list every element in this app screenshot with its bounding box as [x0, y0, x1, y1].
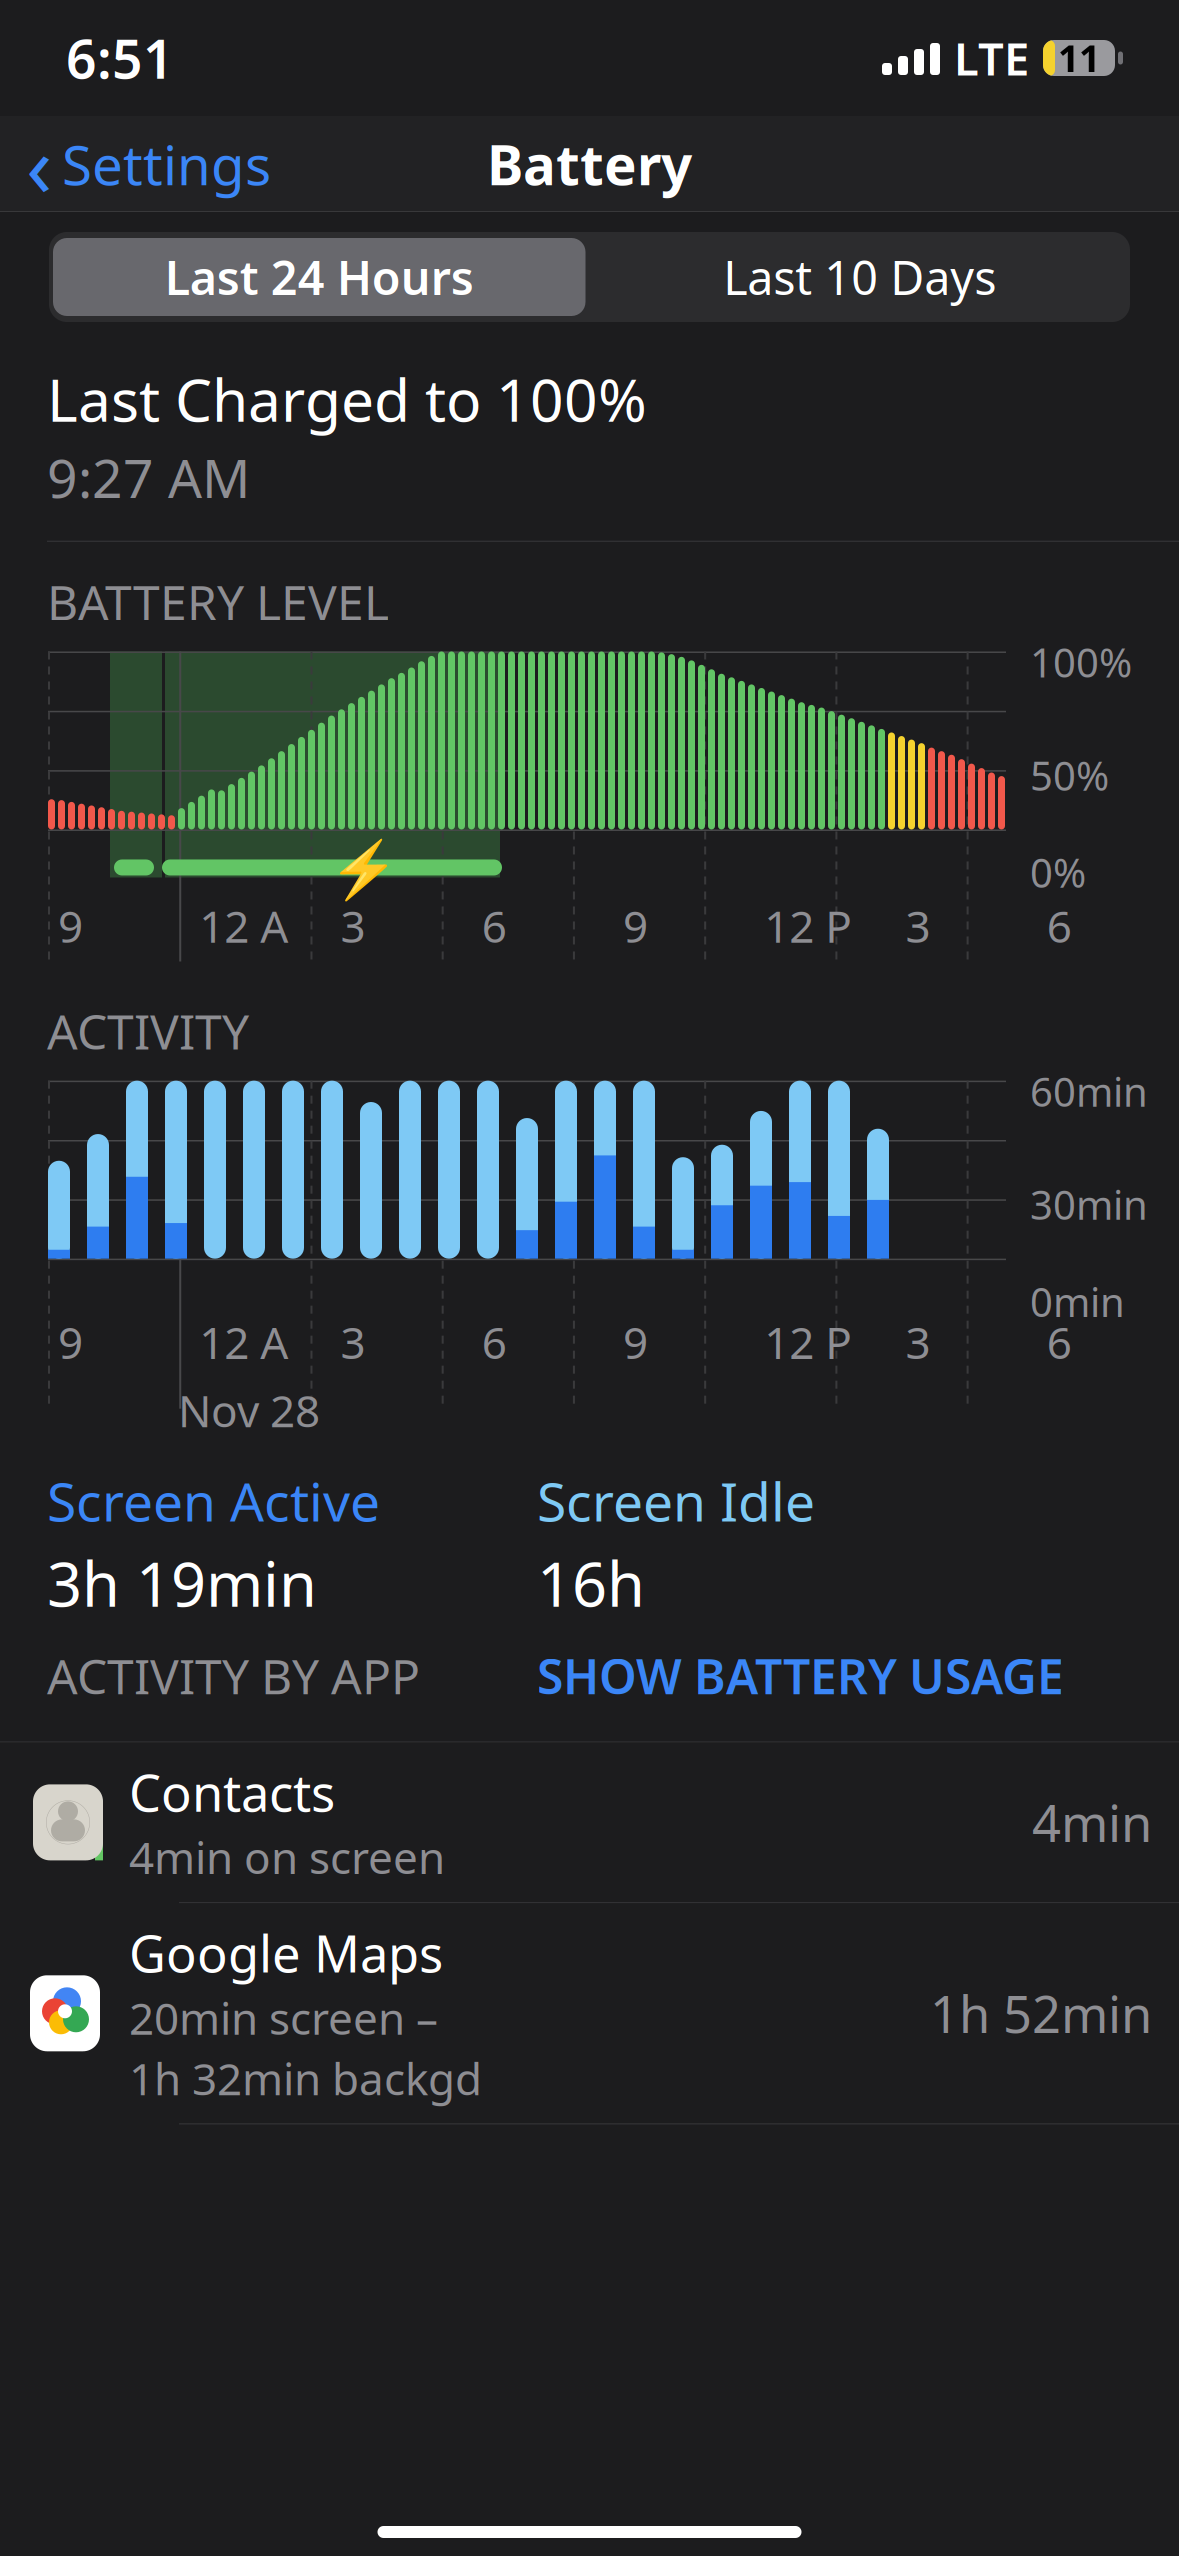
- staticText: ‹: [26, 107, 52, 221]
- staticText: 20min screen –: [129, 1988, 438, 2047]
- staticText: Battery: [487, 128, 692, 200]
- staticText: BATTERY LEVEL: [47, 570, 389, 633]
- button[interactable]: Contacts: [0, 1742, 1179, 1902]
- staticText: 60min: [1030, 1065, 1148, 1118]
- staticText: 16h: [537, 1542, 645, 1624]
- button[interactable]: ‹: [0, 101, 271, 227]
- staticText: 0min: [1030, 1275, 1125, 1328]
- staticText: Google Maps: [129, 1919, 443, 1986]
- staticText: 4min: [1032, 1789, 1152, 1856]
- staticText: 100%: [1030, 635, 1132, 689]
- staticText: 3: [340, 896, 365, 955]
- staticText: 6: [482, 896, 507, 955]
- staticText: 12 P: [764, 1313, 852, 1371]
- staticText: 6:51: [66, 23, 174, 93]
- staticText: ACTIVITY BY APP: [47, 1644, 420, 1707]
- staticText: 3: [905, 1313, 930, 1371]
- staticText: ⚡: [329, 837, 399, 901]
- staticText: Last 10 Days: [723, 246, 996, 308]
- staticText: 4min on screen: [129, 1828, 445, 1886]
- staticText: 50%: [1030, 749, 1109, 802]
- staticText: 6: [1047, 1313, 1072, 1371]
- staticText: 12 P: [764, 896, 852, 955]
- staticText: Screen Active: [47, 1465, 380, 1536]
- button[interactable]: Google Maps: [0, 1903, 1179, 2123]
- staticText: 9: [58, 1313, 83, 1371]
- staticText: Last 24 Hours: [165, 246, 474, 308]
- staticText: 3: [905, 896, 930, 955]
- staticText: 12 A: [199, 896, 288, 955]
- staticText: 6: [1047, 896, 1072, 955]
- staticText: 11: [1058, 33, 1100, 83]
- staticText: 3: [340, 1313, 365, 1371]
- staticText: 9:27 AM: [47, 442, 250, 513]
- staticText: 1h 52min: [930, 1980, 1152, 2047]
- staticText: 9: [58, 896, 83, 955]
- staticText: Settings: [62, 128, 271, 200]
- button[interactable]: Last 24 Hours: [49, 234, 589, 320]
- staticText: 30min: [1030, 1178, 1148, 1231]
- staticText: 1h 32min backgd: [129, 2049, 482, 2107]
- staticText: Nov 28: [178, 1381, 320, 1439]
- button[interactable]: SHOW BATTERY USAGE: [537, 1638, 1064, 1713]
- staticText: Screen Idle: [537, 1465, 815, 1536]
- staticText: 3h 19min: [47, 1542, 317, 1624]
- staticText: 0%: [1030, 846, 1086, 899]
- staticText: SHOW BATTERY USAGE: [537, 1644, 1064, 1707]
- staticText: 6: [482, 1313, 507, 1371]
- staticText: Contacts: [129, 1758, 335, 1826]
- staticText: 12 A: [199, 1313, 288, 1371]
- staticText: ACTIVITY: [47, 999, 249, 1063]
- staticText: Last Charged to 100%: [47, 360, 647, 438]
- button[interactable]: Last 10 Days: [589, 234, 1130, 320]
- staticText: 9: [623, 896, 648, 955]
- staticText: 9: [623, 1313, 648, 1371]
- staticText: LTE: [954, 28, 1029, 88]
